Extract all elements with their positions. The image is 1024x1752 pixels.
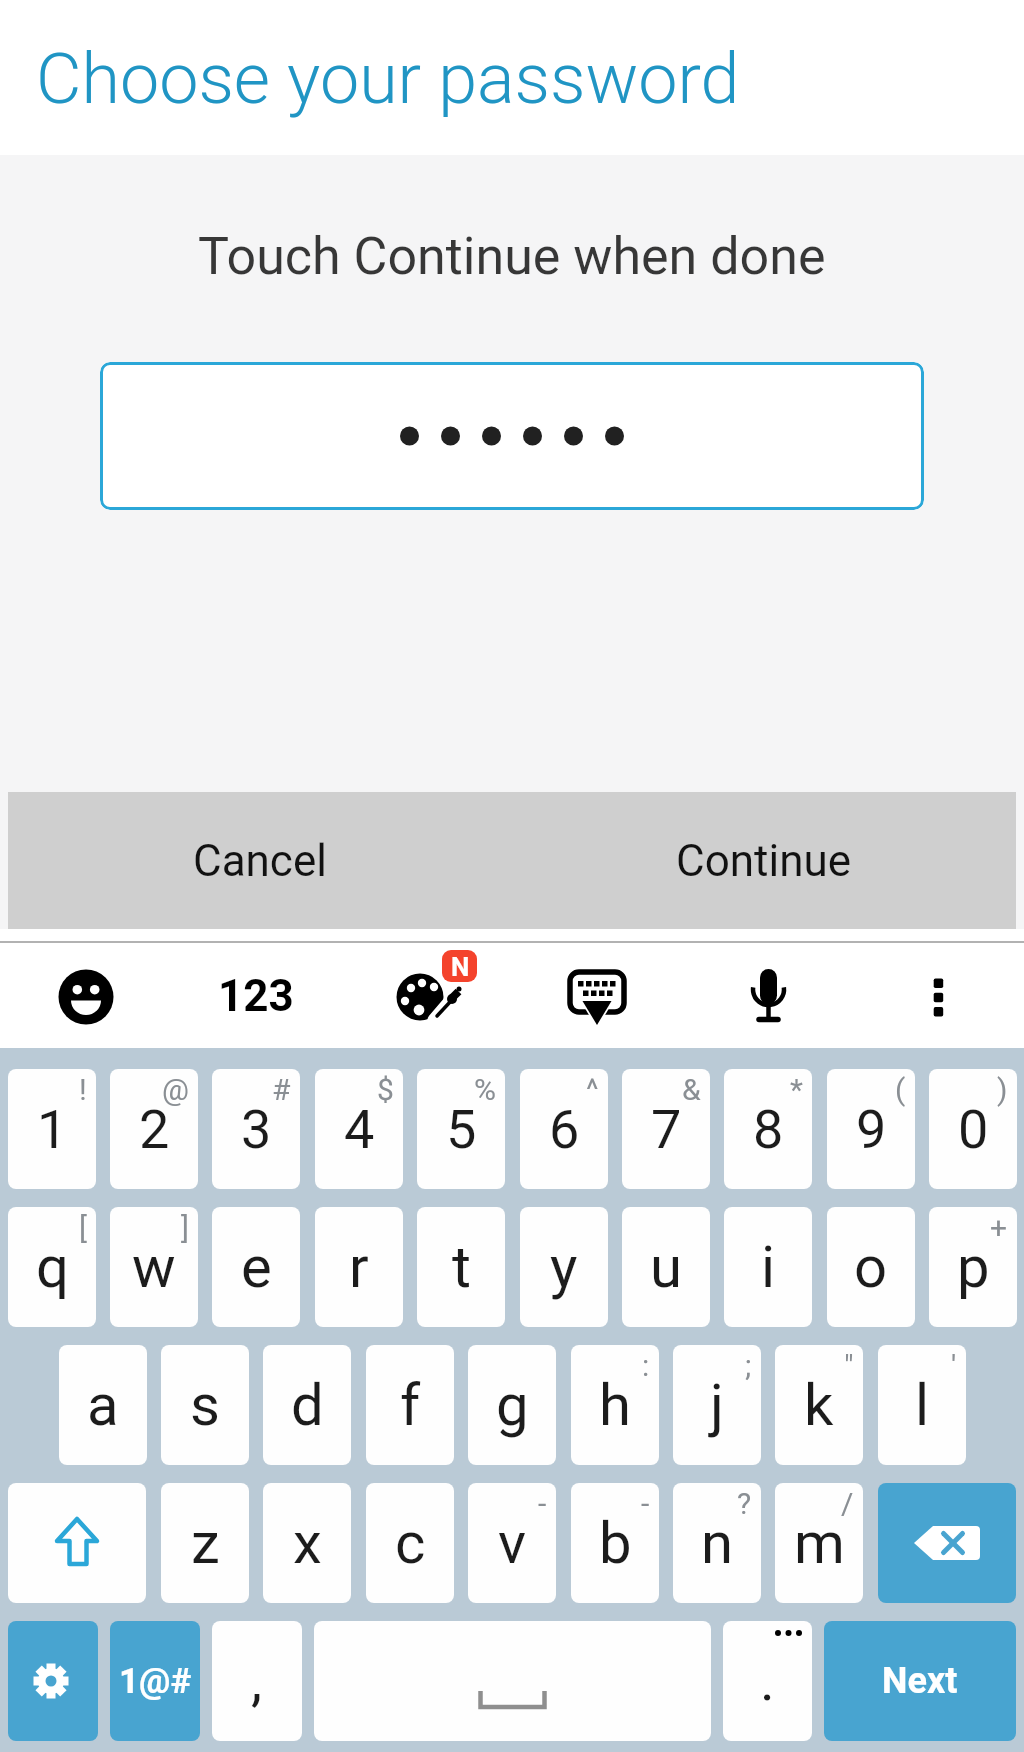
button[interactable]: 6 (520, 1069, 608, 1189)
button[interactable]: n (673, 1483, 761, 1603)
button[interactable]: Next (824, 1621, 1016, 1741)
staticText: 123 (218, 970, 294, 1022)
button[interactable]: w (110, 1207, 198, 1327)
staticText: Next (882, 1660, 958, 1702)
button[interactable]: f (366, 1345, 454, 1465)
button[interactable]: k (775, 1345, 863, 1465)
staticText: Choose your password (36, 38, 740, 120)
staticText: * (790, 1072, 803, 1107)
staticText: [ (79, 1210, 87, 1245)
button[interactable] (8, 1621, 98, 1741)
staticText: j (710, 1371, 724, 1439)
staticText: w (132, 1233, 176, 1301)
staticText: ! (79, 1072, 87, 1107)
button[interactable] (879, 943, 999, 1048)
button[interactable]: t (417, 1207, 505, 1327)
button[interactable] (8, 1483, 146, 1603)
staticText: k (804, 1371, 834, 1439)
staticText: h (599, 1371, 631, 1439)
staticText: Touch Continue when done (198, 226, 826, 287)
button[interactable]: 0 (929, 1069, 1017, 1189)
button[interactable]: 4 (315, 1069, 403, 1189)
staticText: v (498, 1509, 527, 1577)
staticText: d (291, 1371, 324, 1439)
staticText: e (241, 1233, 272, 1301)
staticText: p (957, 1233, 990, 1301)
button[interactable]: 9 (827, 1069, 915, 1189)
button[interactable]: v (468, 1483, 556, 1603)
button[interactable]: g (468, 1345, 556, 1465)
button[interactable]: N (366, 943, 490, 1048)
button[interactable]: m (775, 1483, 863, 1603)
staticText: : (642, 1348, 650, 1383)
button[interactable]: j (673, 1345, 761, 1465)
staticText: a (87, 1371, 119, 1439)
button[interactable]: u (622, 1207, 710, 1327)
button[interactable]: a (59, 1345, 147, 1465)
button[interactable]: d (263, 1345, 351, 1465)
button[interactable] (537, 943, 657, 1048)
button[interactable]: s (161, 1345, 249, 1465)
button[interactable] (878, 1483, 1016, 1603)
button[interactable]: 3 (212, 1069, 300, 1189)
staticText: o (854, 1233, 888, 1301)
button[interactable]: r (315, 1207, 403, 1327)
button[interactable]: 5 (417, 1069, 505, 1189)
button[interactable]: 123 (196, 943, 316, 1048)
button[interactable]: 1 (8, 1069, 96, 1189)
button[interactable]: y (520, 1207, 608, 1327)
staticText: 6 (549, 1098, 580, 1161)
button[interactable]: l (878, 1345, 966, 1465)
button[interactable]: 8 (724, 1069, 812, 1189)
button[interactable]: z (161, 1483, 249, 1603)
staticText: z (191, 1509, 220, 1577)
staticText: Continue (676, 835, 852, 887)
staticText: ^ (586, 1072, 599, 1107)
staticText: 7 (651, 1098, 682, 1161)
staticText: y (550, 1233, 578, 1301)
button[interactable] (100, 362, 924, 510)
staticText: . (760, 1648, 775, 1714)
staticText: Cancel (193, 835, 327, 887)
button[interactable]: Continue (512, 792, 1016, 929)
staticText: N (451, 952, 470, 982)
staticText: n (701, 1509, 734, 1577)
button[interactable]: . (723, 1621, 812, 1741)
button[interactable]: q (8, 1207, 96, 1327)
button[interactable]: 7 (622, 1069, 710, 1189)
staticText: t (452, 1233, 471, 1301)
staticText: 8 (753, 1098, 784, 1161)
staticText: % (474, 1072, 496, 1107)
staticText: m (794, 1509, 845, 1577)
button[interactable]: 2 (110, 1069, 198, 1189)
button[interactable]: c (366, 1483, 454, 1603)
staticText: 5 (446, 1098, 477, 1161)
staticText: r (349, 1233, 369, 1301)
button[interactable] (26, 943, 146, 1048)
staticText: 1 (37, 1098, 68, 1161)
button[interactable]: 1@# (110, 1621, 200, 1741)
staticText: ' (951, 1348, 957, 1383)
staticText: # (272, 1072, 291, 1107)
staticText: ) (997, 1072, 1008, 1107)
staticText: b (599, 1509, 632, 1577)
button[interactable] (314, 1621, 711, 1741)
staticText: g (496, 1371, 529, 1439)
button[interactable]: x (263, 1483, 351, 1603)
button[interactable]: i (724, 1207, 812, 1327)
button[interactable]: p (929, 1207, 1017, 1327)
button[interactable]: o (827, 1207, 915, 1327)
staticText: c (395, 1509, 426, 1577)
staticText: ? (737, 1486, 752, 1521)
staticText: 3 (241, 1098, 272, 1161)
button[interactable]: e (212, 1207, 300, 1327)
button[interactable]: , (212, 1621, 302, 1741)
button[interactable]: h (571, 1345, 659, 1465)
staticText: 4 (344, 1098, 375, 1161)
button[interactable] (708, 943, 828, 1048)
staticText: 9 (856, 1098, 887, 1161)
staticText: ; (745, 1348, 752, 1383)
button[interactable]: Cancel (8, 792, 512, 929)
staticText: 2 (139, 1098, 170, 1161)
button[interactable]: b (571, 1483, 659, 1603)
